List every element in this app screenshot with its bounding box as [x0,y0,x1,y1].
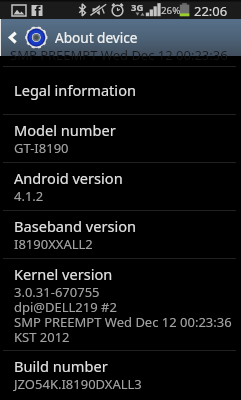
staticText: Build number [14,356,108,376]
staticText: 4.1.2 [14,187,44,205]
button[interactable]: Android version [0,163,241,210]
staticText: 26% [161,4,181,17]
staticText: I8190XXALL2 [14,235,93,253]
button[interactable]: Build number [0,351,241,400]
button[interactable]: Baseband version [0,211,241,258]
button[interactable]: Legal information [0,67,241,114]
other: Navigate up [1,19,25,56]
button[interactable]: Kernel version [0,259,241,350]
staticText: SMP PREEMPT Wed Dec 12 00:23:36 [10,46,228,64]
staticText: JZO54K.I8190DXALL3 [14,375,142,393]
staticText: Legal information [14,80,136,100]
staticText: 22:06 [194,2,228,20]
button[interactable]: Model number [0,115,241,162]
staticText: Baseband version [14,216,137,236]
button[interactable]: Navigate up [0,19,241,56]
staticText: 3.0.31-670755 dpi@DELL219 #2 SMP PREEMPT… [14,283,232,346]
staticText: 3G [131,1,144,14]
staticText: GT-I8190 [14,139,69,157]
staticText: About device [55,28,138,47]
staticText: Kernel version [14,264,113,284]
staticText: Model number [14,120,116,140]
staticText: Android version [14,168,123,188]
